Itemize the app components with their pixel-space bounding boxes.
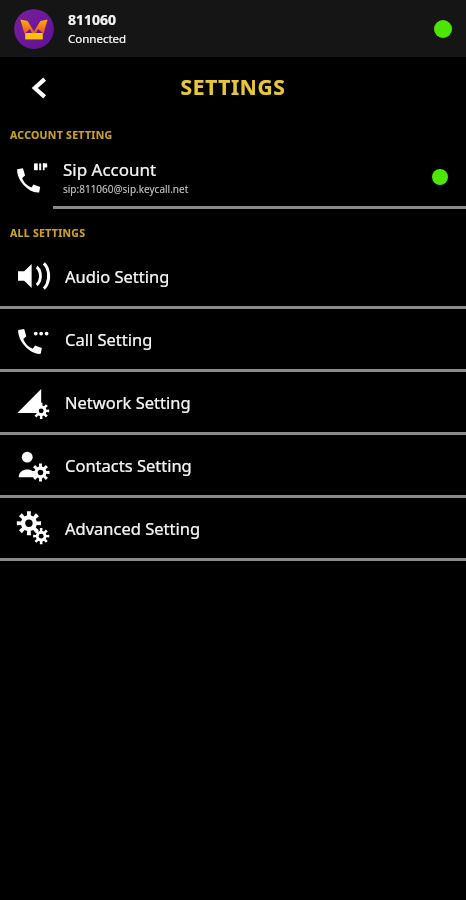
button[interactable]: Advanced Setting [0,498,466,558]
staticText: ALL SETTINGS [10,226,86,240]
button[interactable]: Network Setting [0,372,466,432]
staticText: SETTINGS [0,73,466,102]
staticText: Sip Account [63,158,157,181]
staticText: ACCOUNT SETTING [10,128,113,142]
button[interactable]: Back [18,66,62,110]
button[interactable]: Sip Account [0,148,466,206]
staticText: Network Setting [65,391,191,413]
button[interactable]: 811060 [0,0,466,57]
staticText: Contacts Setting [65,454,192,476]
staticText: sip:811060@sip.keycall.net [63,182,189,196]
staticText: Connected [68,31,127,47]
staticText: 811060 [68,10,117,29]
staticText: Advanced Setting [65,517,201,539]
button[interactable]: Audio Setting [0,246,466,306]
staticText: Audio Setting [65,265,170,287]
staticText: Call Setting [65,328,153,350]
button[interactable]: Contacts Setting [0,435,466,495]
button[interactable]: Call Setting [0,309,466,369]
